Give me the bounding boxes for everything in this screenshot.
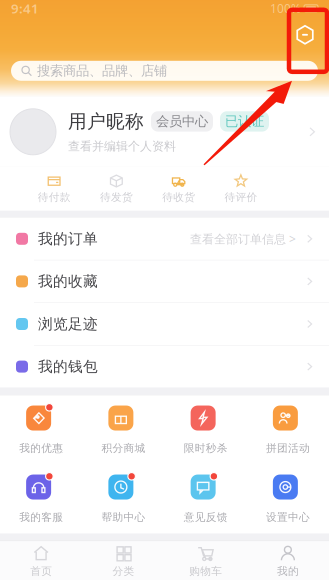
staticText: 100% (270, 0, 301, 16)
staticText: 我的 (277, 565, 299, 578)
button[interactable]: 我的优惠 (0, 396, 82, 465)
staticText: 设置中心 (266, 510, 310, 524)
button[interactable]: 用户昵称 (0, 97, 329, 167)
staticText: 待发货 (100, 191, 133, 204)
staticText: 限时秒杀 (184, 441, 228, 455)
button[interactable]: 帮助中心 (82, 465, 164, 534)
button[interactable]: 我的收藏 (0, 260, 329, 303)
staticText: 首页 (30, 565, 52, 578)
button[interactable]: 待收货 (147, 167, 210, 211)
staticText: 9:41 (11, 0, 39, 17)
staticText: 我的钱包 (38, 358, 98, 376)
staticText: 拼团活动 (266, 441, 310, 455)
staticText: 积分商城 (101, 441, 145, 455)
staticText: 待付款 (38, 191, 71, 204)
button[interactable]: 我的 (247, 541, 329, 580)
staticText: 浏览足迹 (38, 315, 98, 333)
staticText: 意见反馈 (184, 510, 228, 524)
staticText: 已认证 (225, 113, 264, 130)
button[interactable]: 待付款 (23, 167, 85, 211)
staticText: 待收货 (162, 191, 195, 204)
button[interactable]: 浏览足迹 (0, 303, 329, 346)
button[interactable]: 我的订单 (0, 218, 329, 260)
staticText: 搜索商品、品牌、店铺 (37, 63, 167, 79)
staticText: 会员中心 (156, 113, 208, 130)
button[interactable]: 限时秒杀 (164, 396, 247, 465)
staticText: 购物车 (189, 565, 222, 578)
staticText: 我的优惠 (19, 441, 63, 455)
button[interactable]: 分类 (82, 541, 164, 580)
staticText: 分类 (112, 565, 134, 578)
button[interactable]: 积分商城 (82, 396, 164, 465)
button[interactable]: 设置中心 (247, 465, 329, 534)
staticText: 我的客服 (19, 510, 63, 524)
button[interactable]: 我的钱包 (0, 346, 329, 388)
button[interactable]: 搜索商品、品牌、店铺 (11, 61, 318, 81)
staticText: 待评价 (224, 191, 257, 204)
button[interactable]: 拼团活动 (247, 396, 329, 465)
staticText: 帮助中心 (101, 510, 145, 524)
button[interactable]: 待评价 (210, 167, 272, 211)
button[interactable]: 待发货 (85, 167, 147, 211)
staticText: 我的收藏 (38, 272, 98, 290)
button[interactable]: 购物车 (164, 541, 247, 580)
button[interactable]: 首页 (0, 541, 82, 580)
button[interactable]: 我的客服 (0, 465, 82, 534)
button[interactable]: Settings (288, 18, 322, 52)
staticText: 查看全部订单信息 > (190, 231, 296, 247)
staticText: 我的订单 (38, 230, 98, 248)
staticText: 查看并编辑个人资料 (68, 139, 176, 154)
staticText: 用户昵称 (68, 110, 144, 133)
button[interactable]: 意见反馈 (164, 465, 247, 534)
